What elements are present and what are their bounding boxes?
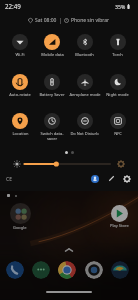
staticText: Night mode <box>106 92 129 97</box>
button[interactable]: chrome <box>58 261 76 279</box>
button[interactable]: Bluetooth <box>68 34 101 57</box>
staticText: 35% <box>115 3 126 10</box>
staticText: Torch <box>112 52 123 57</box>
button[interactable]: NFC <box>101 113 134 136</box>
button[interactable]: camera <box>85 261 103 279</box>
button[interactable]: Brightness settings <box>116 159 126 169</box>
button[interactable]: Edit <box>107 174 116 183</box>
staticText: Do Not Disturb <box>70 131 99 136</box>
button[interactable]: Settings <box>122 174 131 183</box>
button[interactable]: messages <box>32 261 50 279</box>
staticText: Google <box>13 225 27 230</box>
button[interactable]: Play Store <box>103 205 135 228</box>
button[interactable]: User <box>90 174 99 183</box>
staticText: Switch data-saver <box>36 131 68 141</box>
staticText: Battery Saver <box>39 92 65 97</box>
staticText: NFC <box>114 131 122 136</box>
staticText: Location <box>12 131 29 136</box>
button[interactable]: Torch <box>101 34 134 57</box>
button[interactable]: photos <box>111 261 129 279</box>
button[interactable]: Location <box>4 113 36 136</box>
staticText: Bluetooth <box>75 52 94 57</box>
button[interactable]: Do Not Disturb <box>68 113 101 136</box>
staticText: 22:49 <box>5 2 21 10</box>
staticText: Aeroplane mode <box>69 92 101 97</box>
staticText: Auto-rotate <box>9 92 31 97</box>
button[interactable]: Mobile data <box>36 34 68 57</box>
staticText: Sat 08:00 <box>35 17 57 24</box>
button[interactable]: Google <box>4 203 36 230</box>
button[interactable]: Wi-Fi <box>4 34 36 57</box>
staticText: Play Store <box>110 223 129 228</box>
button[interactable]: Aeroplane mode <box>68 74 101 97</box>
button[interactable]: Night mode <box>101 74 134 97</box>
button[interactable]: App drawer <box>63 247 75 253</box>
button[interactable]: phone <box>6 261 24 279</box>
staticText: Wi-Fi <box>15 52 25 57</box>
button[interactable]: Switch data-saver <box>36 113 68 141</box>
staticText: Mobile data <box>41 52 64 57</box>
button[interactable]: Auto-rotate <box>4 74 36 97</box>
button[interactable]: Battery Saver <box>36 74 68 97</box>
staticText: Phone sin vibrar <box>71 17 110 24</box>
staticText: CE <box>6 176 12 183</box>
